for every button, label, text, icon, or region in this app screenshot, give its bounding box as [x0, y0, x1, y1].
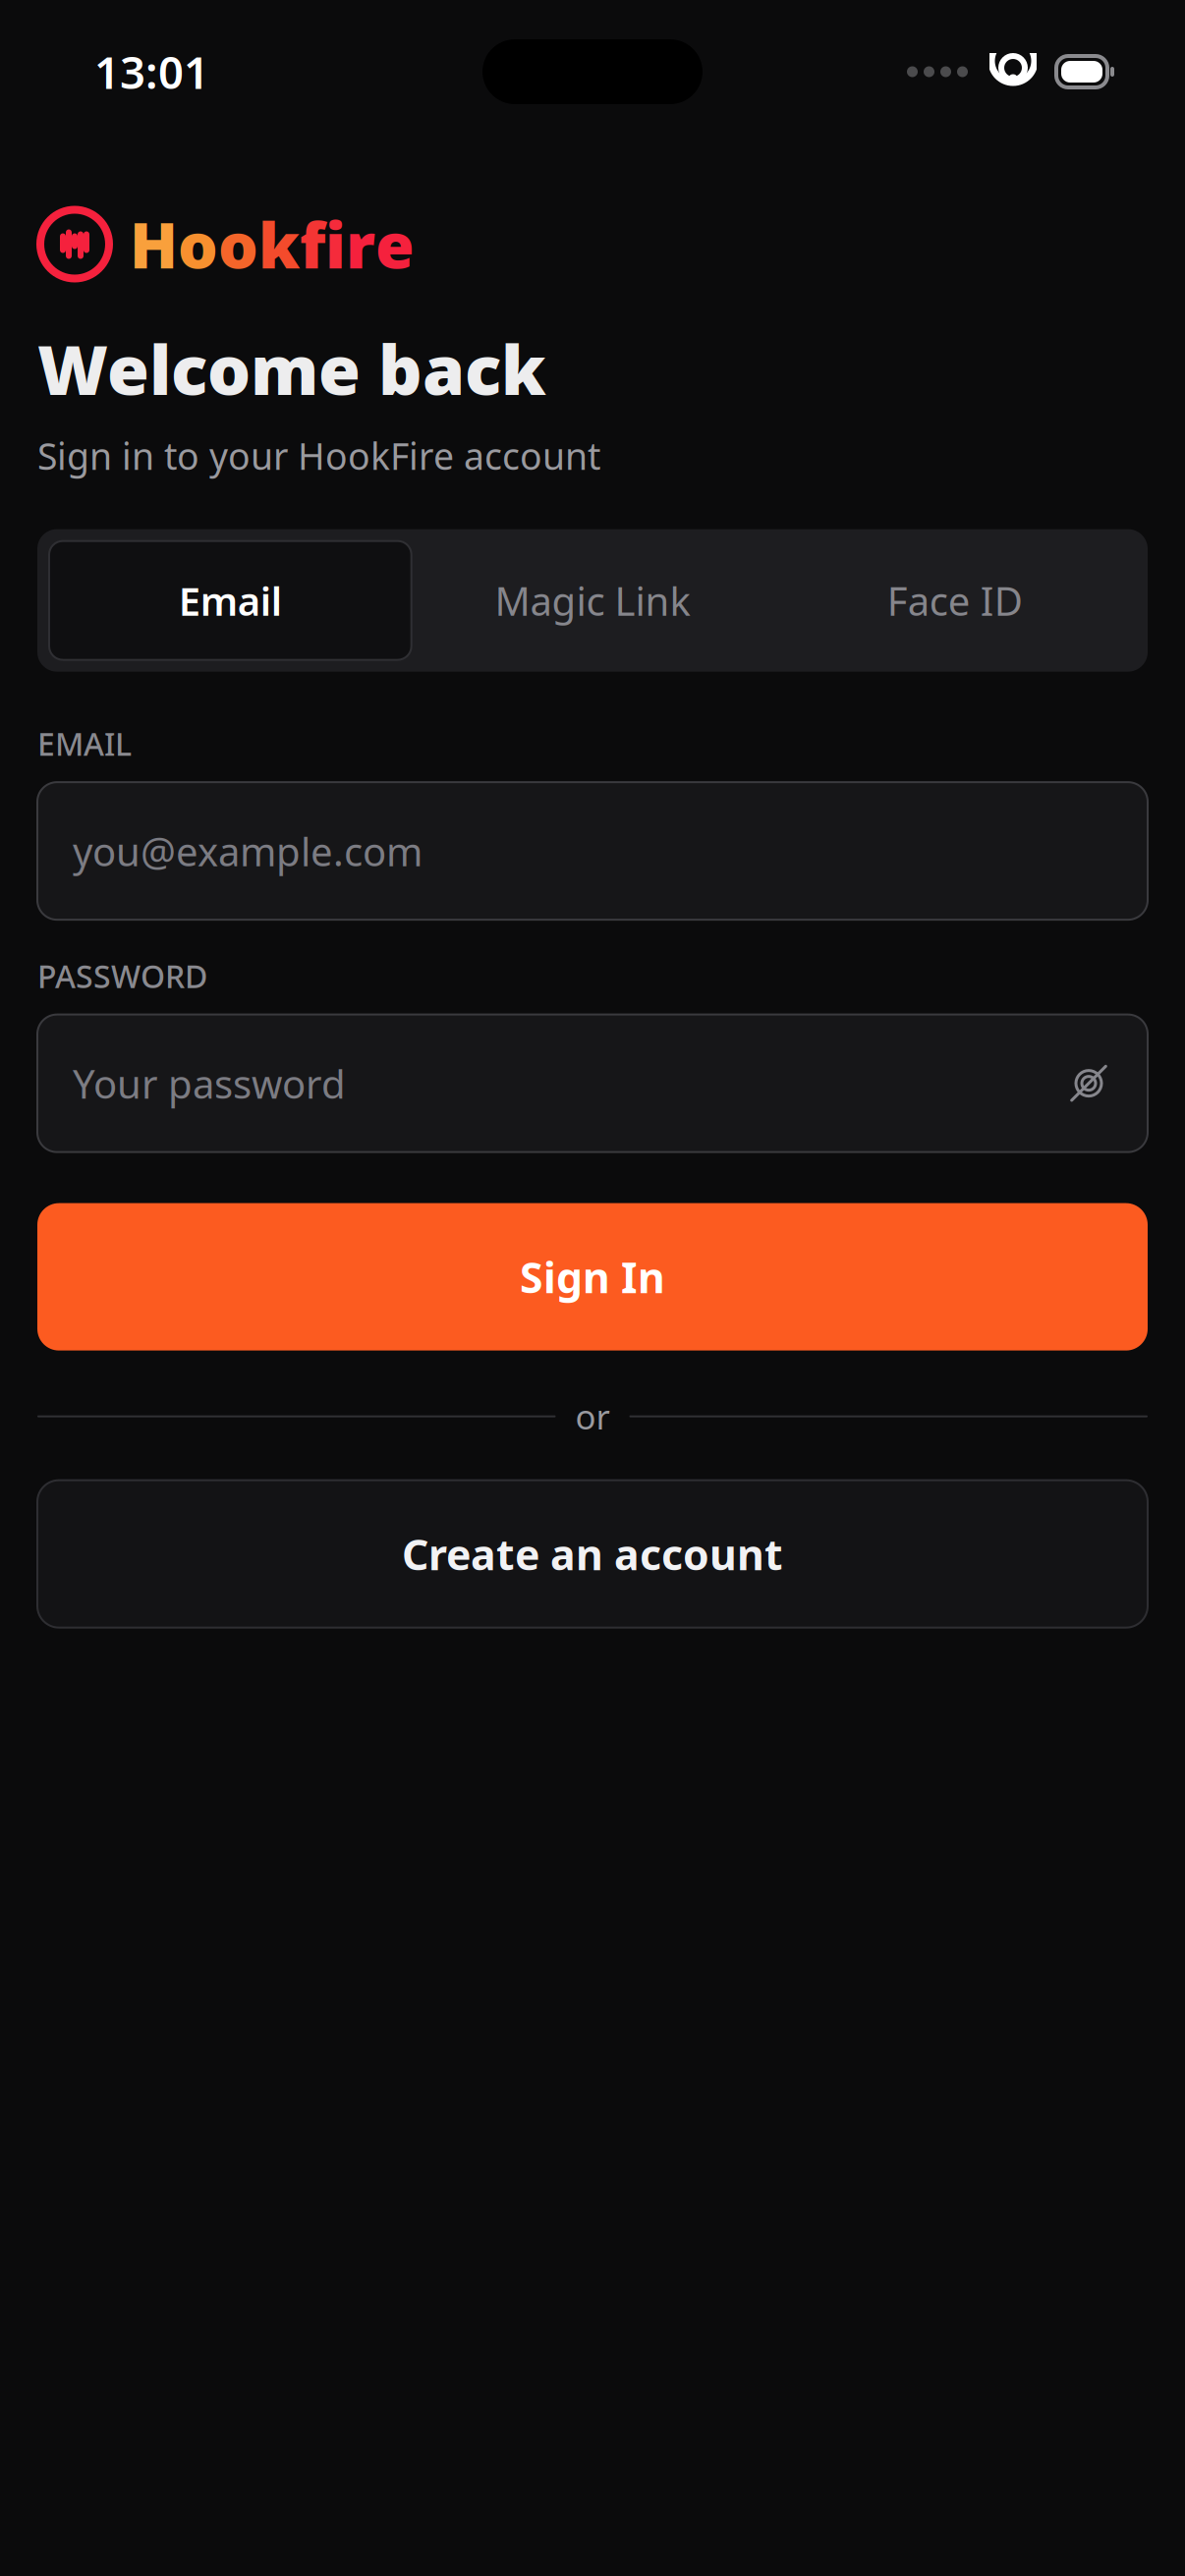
- staticText: Create an account: [402, 1526, 783, 1582]
- button[interactable]: Email: [49, 541, 411, 660]
- button[interactable]: Face ID: [774, 541, 1136, 660]
- staticText: k: [258, 202, 300, 286]
- staticText: 13:01: [94, 42, 209, 101]
- staticText: PASSWORD: [37, 955, 207, 997]
- staticText: o: [178, 202, 218, 286]
- staticText: H: [130, 202, 178, 286]
- staticText: Sign in to your HookFire account: [37, 431, 600, 480]
- staticText: Face ID: [887, 574, 1023, 627]
- button[interactable]: Sign In: [37, 1203, 1148, 1350]
- button[interactable]: Magic Link: [411, 541, 774, 660]
- staticText: o: [218, 202, 258, 286]
- button[interactable]: Your password: [37, 1014, 1148, 1152]
- staticText: EMAIL: [37, 723, 132, 764]
- staticText: e: [375, 202, 415, 286]
- staticText: i: [325, 202, 346, 286]
- staticText: Welcome back: [37, 323, 546, 414]
- button[interactable]: you@example.com: [37, 782, 1148, 920]
- button[interactable]: Create an account: [37, 1480, 1148, 1628]
- staticText: Sign In: [520, 1249, 665, 1305]
- staticText: f: [300, 202, 325, 286]
- staticText: Magic Link: [495, 574, 690, 627]
- staticText: r: [346, 202, 375, 286]
- staticText: Email: [179, 574, 282, 627]
- staticText: or: [575, 1394, 610, 1439]
- staticText: Your password: [73, 1057, 346, 1109]
- staticText: you@example.com: [73, 825, 423, 877]
